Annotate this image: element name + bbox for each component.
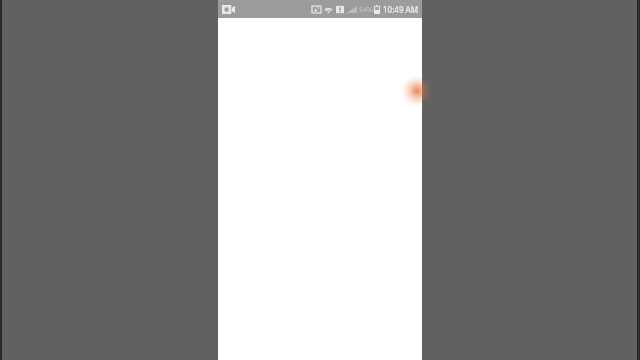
button[interactable]: [218, 18, 422, 360]
staticText: 54%: [359, 5, 373, 15]
staticText: 10:49 AM: [383, 4, 419, 15]
button[interactable]: Screen recording: [221, 3, 235, 15]
other: Touch indicator: [401, 75, 433, 107]
